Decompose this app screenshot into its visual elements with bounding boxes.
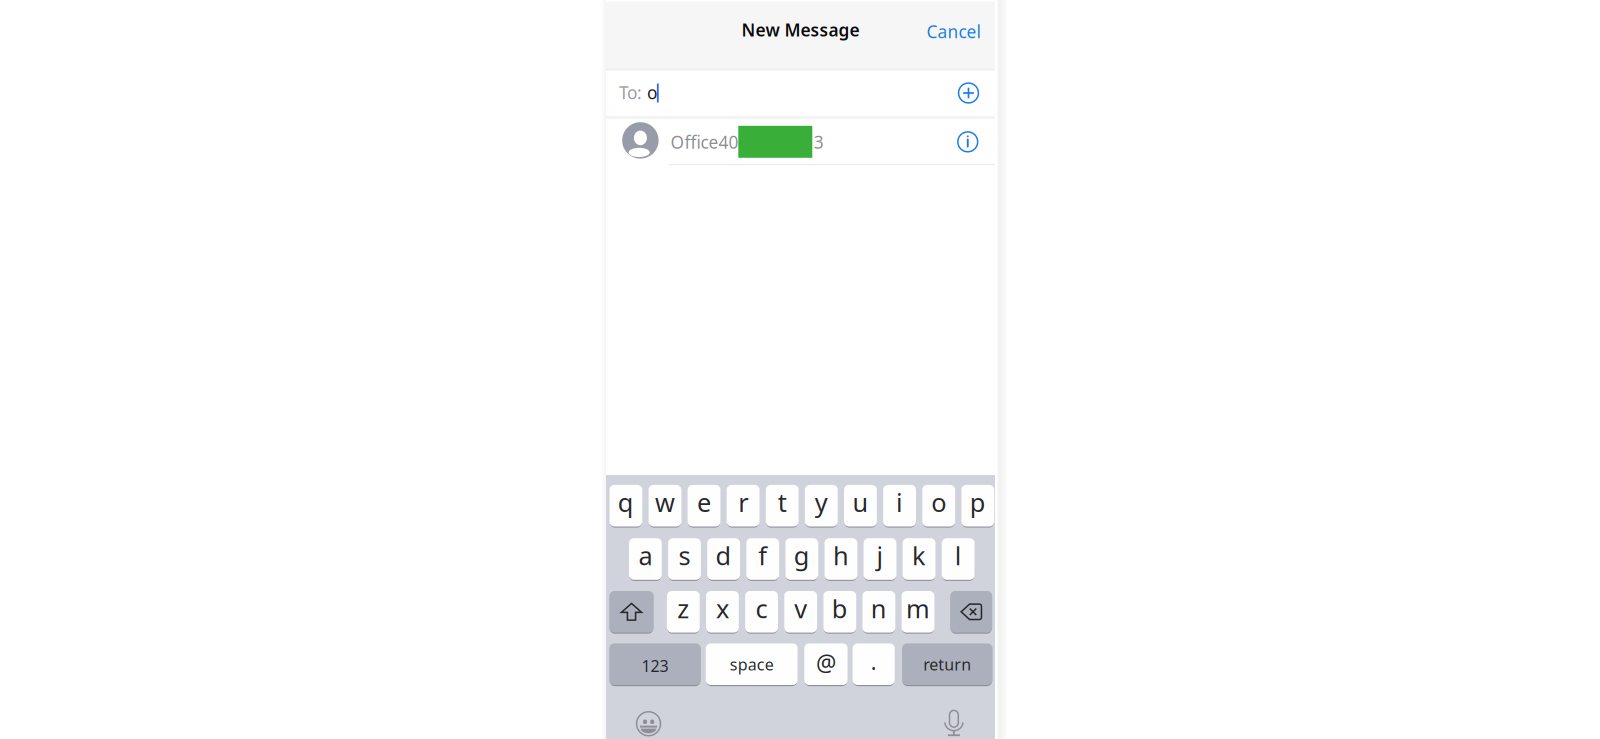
staticText: x: [716, 591, 729, 625]
button[interactable]: [823, 591, 856, 633]
staticText: .: [871, 647, 877, 676]
staticText: New Message: [741, 18, 859, 41]
button[interactable]: [629, 538, 662, 580]
staticText: c: [755, 591, 767, 625]
button[interactable]: [902, 643, 992, 685]
button[interactable]: [824, 538, 857, 580]
button[interactable]: [648, 485, 681, 526]
staticText: u: [852, 485, 868, 519]
button[interactable]: [805, 485, 838, 526]
button[interactable]: Office40: [606, 119, 995, 164]
button[interactable]: [961, 485, 994, 526]
button[interactable]: [668, 538, 701, 580]
button[interactable]: [727, 485, 760, 526]
button[interactable]: [942, 538, 975, 580]
button[interactable]: [863, 538, 896, 580]
staticText: f: [758, 539, 767, 572]
staticText: e: [697, 485, 711, 519]
button[interactable]: [688, 485, 720, 526]
button[interactable]: [667, 591, 700, 633]
button[interactable]: [707, 538, 740, 580]
staticText: b: [832, 591, 848, 625]
staticText: k: [912, 539, 926, 572]
staticText: i: [896, 485, 903, 519]
staticText: w: [655, 485, 675, 519]
staticText: z: [677, 591, 689, 625]
staticText: v: [794, 591, 807, 625]
staticText: d: [716, 539, 732, 572]
button[interactable]: [785, 538, 818, 580]
staticText: g: [794, 539, 810, 572]
button[interactable]: [804, 643, 848, 685]
staticText: p: [970, 485, 986, 519]
staticText: o: [931, 485, 946, 519]
button[interactable]: Shift: [609, 591, 654, 633]
staticText: h: [833, 539, 849, 572]
button[interactable]: [853, 643, 895, 685]
staticText: s: [678, 539, 690, 572]
button[interactable]: [609, 485, 642, 526]
button[interactable]: [784, 591, 817, 633]
button[interactable]: [746, 538, 779, 580]
button[interactable]: [903, 538, 935, 580]
staticText: a: [638, 539, 652, 572]
staticText: n: [871, 591, 887, 625]
button[interactable]: [745, 591, 778, 633]
staticText: j: [876, 539, 883, 572]
button[interactable]: [766, 485, 799, 526]
button[interactable]: [862, 591, 895, 633]
staticText: l: [955, 539, 962, 572]
staticText: t: [778, 485, 787, 519]
staticText: q: [618, 485, 634, 519]
button[interactable]: [609, 643, 701, 685]
staticText: r: [738, 485, 748, 519]
staticText: 123: [642, 655, 669, 676]
staticText: m: [906, 591, 930, 625]
button[interactable]: [883, 485, 916, 526]
button[interactable]: [922, 485, 955, 526]
staticText: space: [730, 654, 774, 675]
button[interactable]: Contact info: [956, 130, 978, 152]
staticText: o: [647, 81, 657, 104]
button[interactable]: [706, 643, 798, 685]
button[interactable]: Add contact: [958, 82, 979, 104]
button[interactable]: Dictation: [944, 710, 964, 737]
staticText: Cancel: [927, 20, 981, 43]
staticText: y: [815, 485, 828, 519]
button[interactable]: [901, 591, 934, 633]
staticText: Office40: [670, 130, 738, 153]
button[interactable]: Emoji keyboard: [636, 711, 661, 736]
button[interactable]: [844, 485, 877, 526]
staticText: return: [923, 654, 971, 675]
staticText: @: [816, 648, 836, 678]
staticText: To:: [619, 81, 647, 104]
button[interactable]: [706, 591, 739, 633]
button[interactable]: Delete: [950, 591, 992, 633]
staticText: 3: [814, 130, 824, 153]
button[interactable]: Cancel: [907, 13, 981, 49]
